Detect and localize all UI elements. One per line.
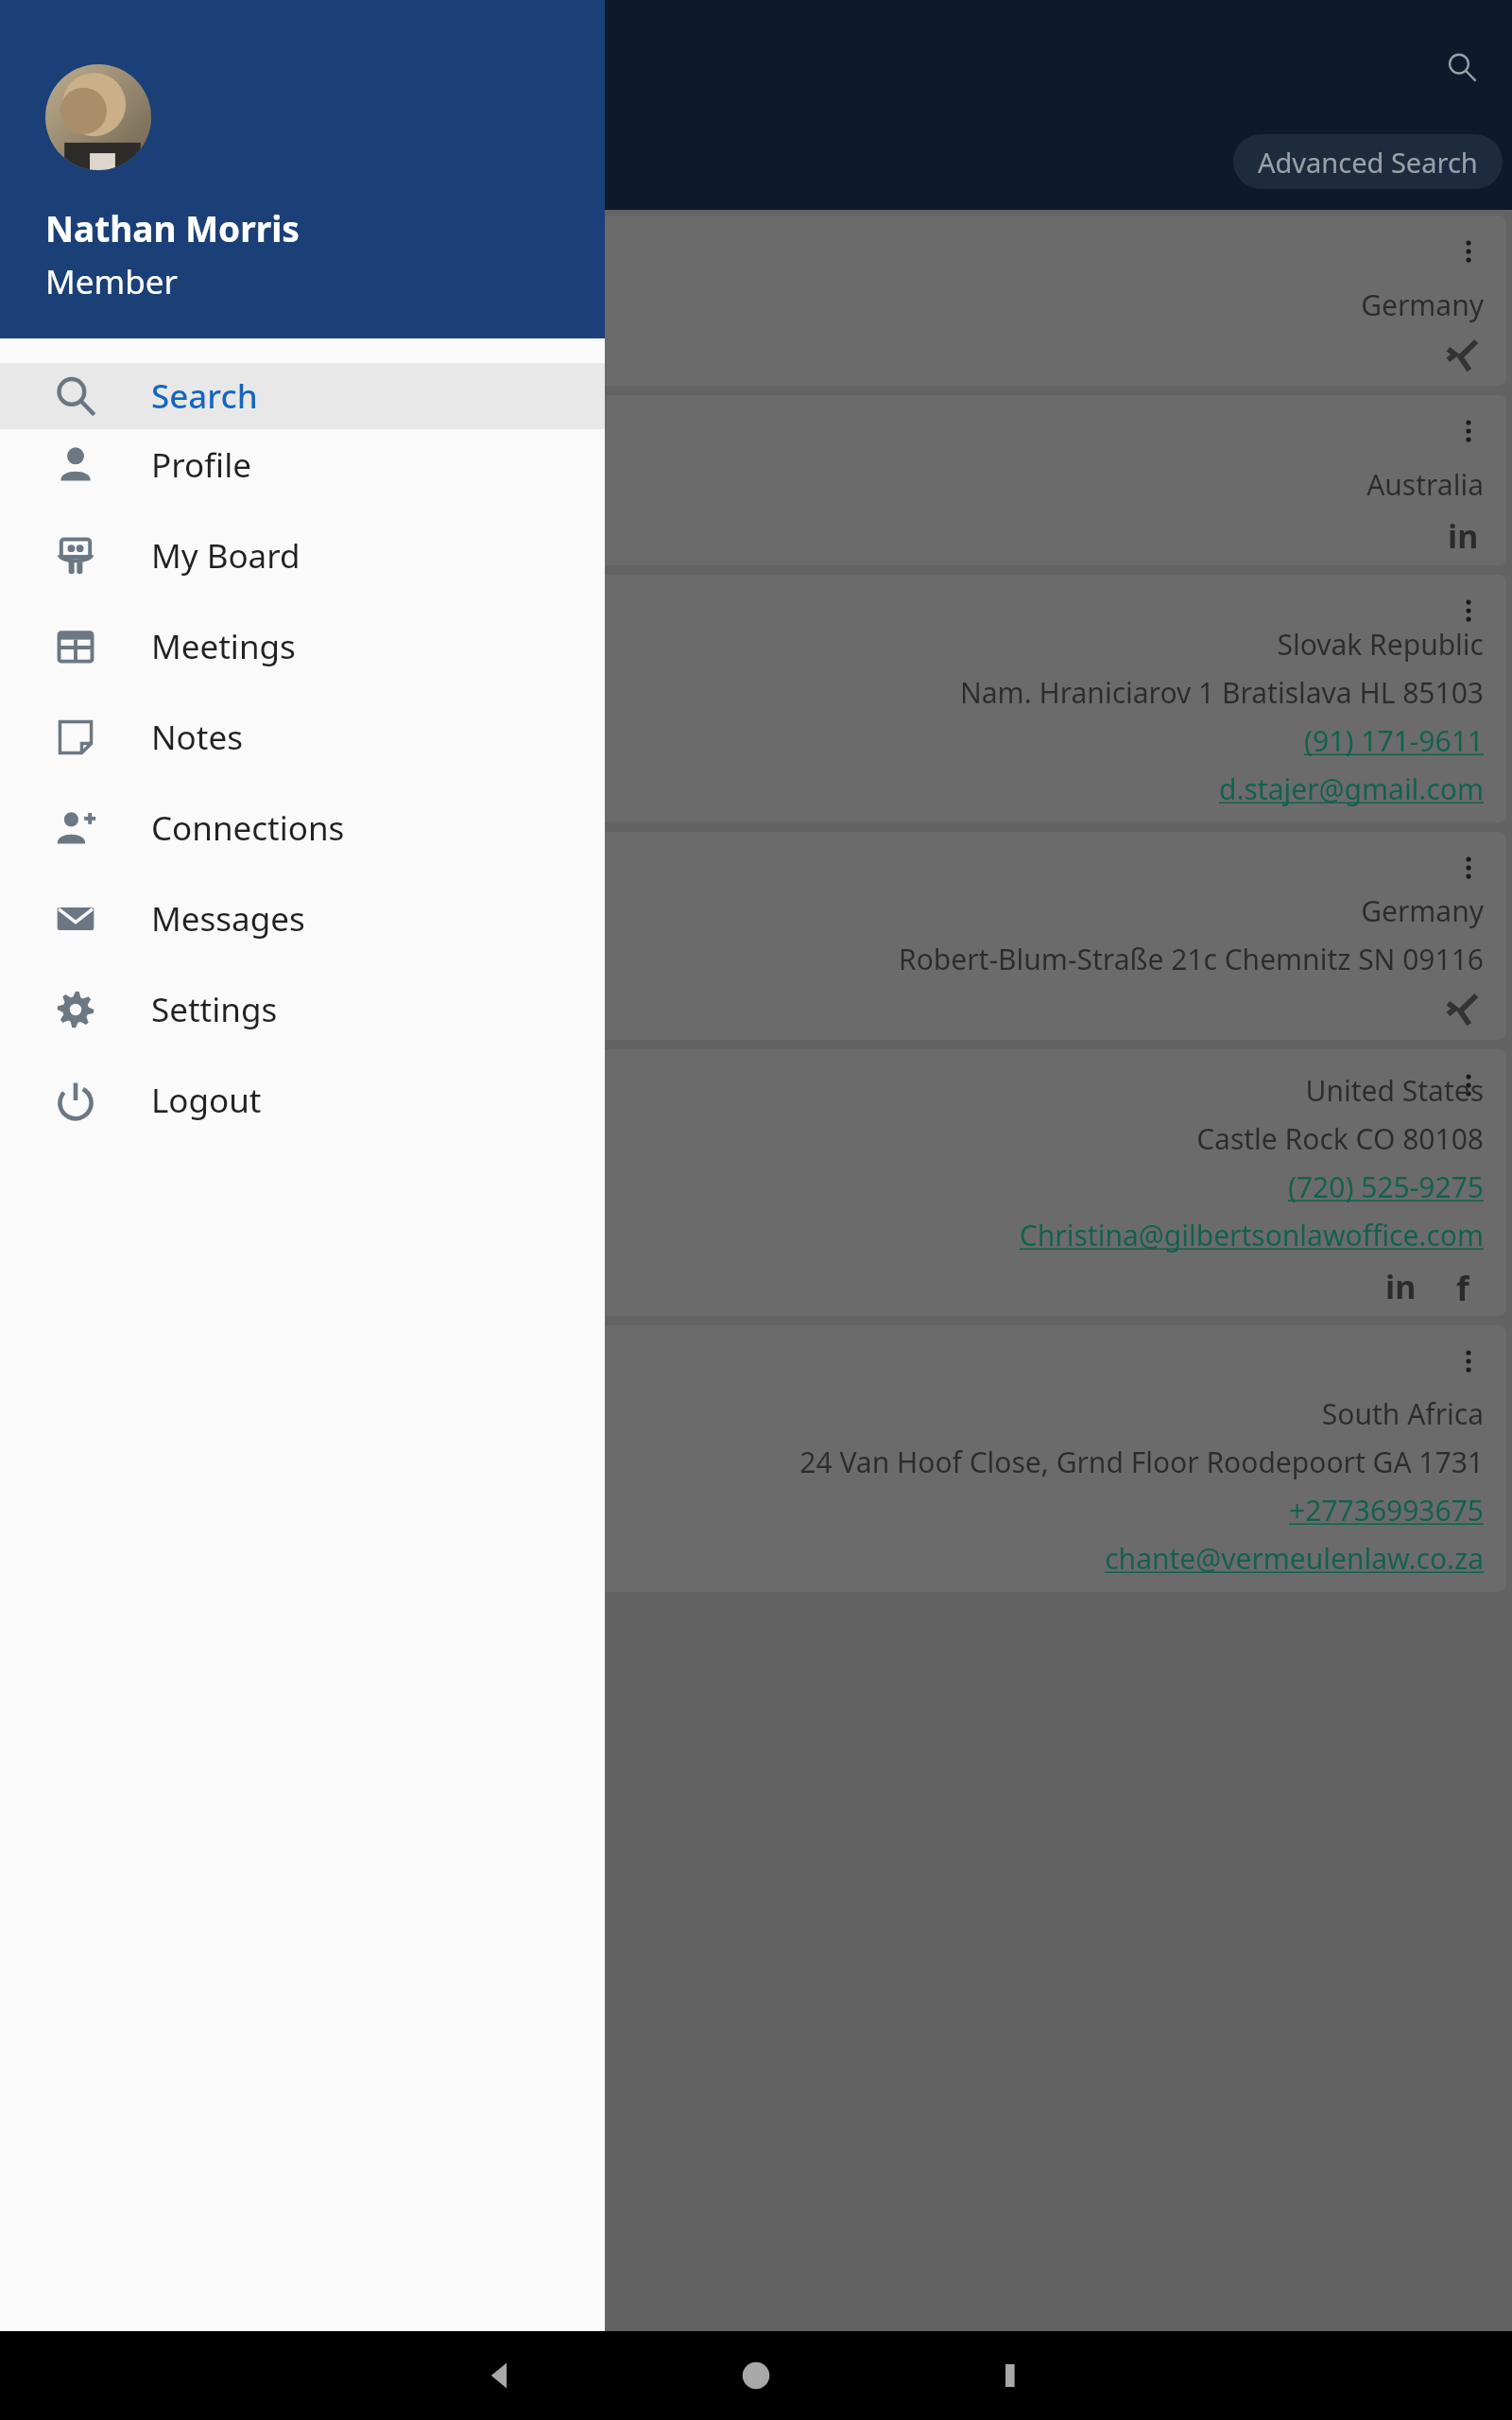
staticText: (91) 171-9611: [1304, 721, 1484, 760]
button[interactable]: in: [1442, 514, 1484, 556]
staticText: My Board: [151, 533, 301, 579]
staticText: Logout: [151, 1078, 262, 1123]
button[interactable]: xing: [1442, 989, 1484, 1030]
button[interactable]: Meetings: [0, 618, 605, 674]
staticText: Messages: [151, 896, 305, 942]
staticText: Meetings: [151, 624, 296, 669]
button[interactable]: More options: [4, 1049, 1506, 1316]
button[interactable]: Home: [628, 2331, 884, 2420]
button[interactable]: Settings: [0, 981, 605, 1037]
button[interactable]: More options: [4, 1325, 1506, 1592]
button[interactable]: fb: [1442, 1265, 1484, 1306]
button[interactable]: Recent apps: [884, 2331, 1139, 2420]
button[interactable]: Profile: [0, 437, 605, 493]
button[interactable]: More options: [1440, 1333, 1497, 1390]
button[interactable]: More options: [1440, 403, 1497, 459]
button[interactable]: Search: [1433, 38, 1491, 96]
staticText: Slovak Republic: [1277, 625, 1484, 664]
button[interactable]: My Board: [0, 527, 605, 583]
staticText: Germany: [1361, 285, 1484, 324]
staticText: chante@vermeulenlaw.co.za: [1105, 1539, 1484, 1578]
button[interactable]: Messages: [0, 890, 605, 946]
staticText: f: [1456, 1265, 1469, 1306]
button[interactable]: More options: [4, 395, 1506, 565]
staticText: (720) 525-9275: [1287, 1167, 1484, 1206]
staticText: Advanced Search: [1258, 144, 1478, 181]
staticText: in: [1385, 1265, 1417, 1306]
staticText: Nam. Hraniciarov 1 Bratislava HL 85103: [959, 673, 1484, 712]
button[interactable]: Back: [373, 2331, 628, 2420]
button[interactable]: xing: [1442, 335, 1484, 376]
button[interactable]: Connections: [0, 800, 605, 856]
staticText: +27736993675: [1289, 1491, 1484, 1530]
button[interactable]: More options: [4, 216, 1506, 386]
button[interactable]: Profile photo: [45, 64, 151, 170]
button[interactable]: More options: [1440, 582, 1497, 639]
staticText: Notes: [151, 715, 243, 760]
staticText: South Africa: [1321, 1394, 1484, 1433]
button[interactable]: Search: [0, 363, 605, 429]
staticText: Germany: [1361, 891, 1484, 930]
button[interactable]: More options: [1440, 1057, 1497, 1114]
staticText: Nathan Morris: [45, 204, 300, 251]
staticText: d.stajer@gmail.com: [1219, 769, 1484, 808]
button[interactable]: in: [1380, 1265, 1421, 1306]
staticText: Castle Rock CO 80108: [1196, 1119, 1484, 1158]
staticText: Settings: [151, 987, 278, 1032]
button[interactable]: Notes: [0, 709, 605, 765]
button[interactable]: More options: [1440, 839, 1497, 896]
button[interactable]: More options: [4, 575, 1506, 822]
button[interactable]: Logout: [0, 1072, 605, 1128]
staticText: Australia: [1366, 465, 1484, 504]
staticText: Christina@gilbertsonlawoffice.com: [1019, 1216, 1484, 1254]
button[interactable]: More options: [4, 832, 1506, 1040]
button[interactable]: Advanced Search: [1233, 134, 1503, 189]
staticText: Profile: [151, 442, 251, 488]
staticText: Search: [151, 373, 258, 419]
staticText: 24 Van Hoof Close, Grnd Floor Roodepoort…: [799, 1443, 1484, 1481]
staticText: United States: [1305, 1071, 1484, 1110]
staticText: in: [1448, 514, 1479, 556]
staticText: Connections: [151, 805, 345, 851]
staticText: Robert-Blum-Straße 21c Chemnitz SN 09116: [899, 940, 1484, 978]
button[interactable]: More options: [1440, 223, 1497, 280]
staticText: Member: [45, 259, 178, 304]
